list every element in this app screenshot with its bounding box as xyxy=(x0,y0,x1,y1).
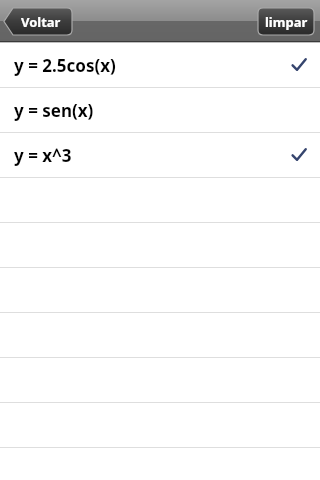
staticText: y = sen(x) xyxy=(14,99,94,122)
button[interactable]: y = sen(x) xyxy=(0,88,320,132)
staticText: y = 2.5cos(x) xyxy=(14,54,116,77)
button[interactable]: Voltar xyxy=(4,8,72,35)
other: Selected xyxy=(288,54,310,76)
staticText: y = x^3 xyxy=(14,144,72,167)
staticText: Voltar xyxy=(21,13,61,31)
button[interactable]: limpar xyxy=(258,8,314,35)
staticText: limpar xyxy=(265,13,308,31)
button[interactable]: y = 2.5cos(x) xyxy=(0,43,320,87)
button[interactable]: y = x^3 xyxy=(0,133,320,177)
other: Selected xyxy=(288,144,310,166)
